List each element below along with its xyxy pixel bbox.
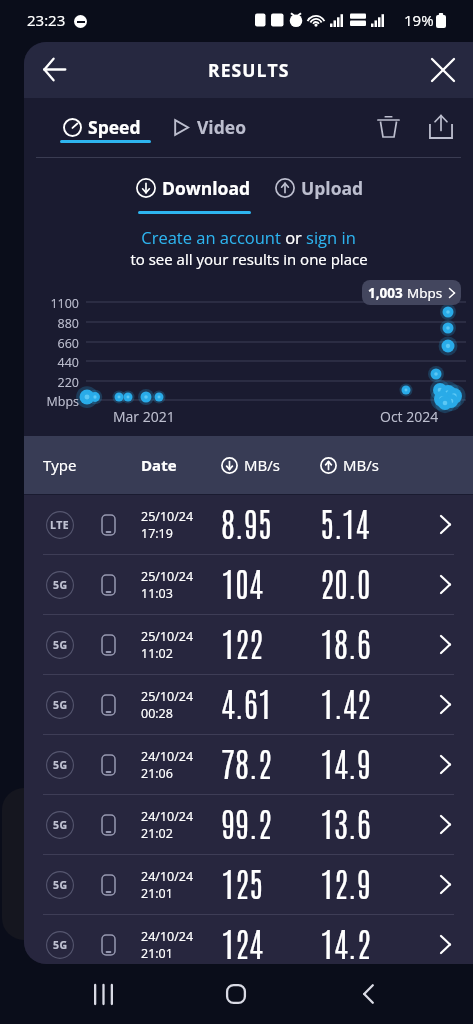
staticText: 122 bbox=[221, 620, 263, 664]
button[interactable]: MB/s bbox=[221, 455, 280, 475]
staticText: 25/10/24 bbox=[141, 508, 194, 525]
button[interactable]: Upload bbox=[267, 168, 372, 208]
staticText: 25/10/24 bbox=[141, 568, 194, 585]
staticText: 440 bbox=[24, 354, 79, 371]
staticText: 14.2 bbox=[320, 920, 371, 964]
staticText: 25/10/24 bbox=[141, 688, 194, 705]
staticText: 5G bbox=[53, 758, 68, 772]
button[interactable]: Recents bbox=[79, 970, 127, 1018]
button[interactable]: Video bbox=[163, 110, 254, 144]
staticText: 5G bbox=[53, 638, 68, 652]
button[interactable]: Speed bbox=[54, 110, 150, 144]
staticText: 99.2 bbox=[221, 800, 272, 844]
button[interactable]: 5G bbox=[24, 855, 473, 914]
staticText: 23:23 bbox=[27, 10, 66, 30]
staticText: 12.9 bbox=[320, 860, 371, 904]
staticText: 20.0 bbox=[320, 560, 371, 604]
staticText: 21:01 bbox=[141, 945, 173, 962]
staticText: 24/10/24 bbox=[141, 928, 194, 945]
staticText: RESULTS bbox=[208, 58, 290, 82]
staticText: 14.9 bbox=[320, 740, 371, 784]
staticText: LTE bbox=[50, 518, 70, 532]
staticText: 21:01 bbox=[141, 885, 173, 902]
staticText: 19% bbox=[404, 10, 434, 30]
button[interactable]: 5G bbox=[24, 675, 473, 734]
button[interactable]: Back bbox=[30, 45, 78, 93]
staticText: Mbps bbox=[24, 393, 79, 410]
staticText: Oct 2024 bbox=[380, 407, 439, 426]
staticText: Mar 2021 bbox=[113, 407, 175, 426]
staticText: 5G bbox=[53, 878, 68, 892]
staticText: 00:28 bbox=[141, 705, 173, 722]
button[interactable]: Download bbox=[128, 168, 259, 208]
staticText: 11:02 bbox=[141, 645, 173, 662]
staticText: 5G bbox=[53, 578, 68, 592]
button[interactable]: Close bbox=[419, 46, 467, 94]
button[interactable]: MB/s bbox=[320, 455, 379, 475]
staticText: Mbps bbox=[407, 284, 443, 302]
button[interactable]: LTE bbox=[24, 495, 473, 554]
button[interactable]: Delete bbox=[364, 102, 412, 150]
button[interactable]: 1,003 bbox=[362, 280, 461, 305]
button[interactable]: 5G bbox=[24, 795, 473, 854]
staticText: 24/10/24 bbox=[141, 868, 194, 885]
button[interactable]: 5G bbox=[24, 735, 473, 794]
staticText: 11:03 bbox=[141, 585, 173, 602]
staticText: Type bbox=[43, 455, 77, 475]
button[interactable]: Share bbox=[417, 102, 465, 150]
staticText: 24/10/24 bbox=[141, 808, 194, 825]
staticText: 18.6 bbox=[320, 620, 371, 664]
staticText: 220 bbox=[24, 374, 79, 391]
staticText: 124 bbox=[221, 920, 263, 964]
staticText: MB/s bbox=[343, 455, 379, 475]
button[interactable]: 5G bbox=[24, 615, 473, 674]
staticText: 5G bbox=[53, 818, 68, 832]
staticText: 5.14 bbox=[320, 500, 370, 544]
staticText: 17:19 bbox=[141, 525, 173, 542]
button[interactable]: Home bbox=[212, 970, 260, 1018]
button[interactable]: 5G bbox=[24, 915, 473, 964]
staticText: 1.42 bbox=[320, 680, 371, 724]
staticText: 1,003 bbox=[368, 284, 403, 302]
staticText: 125 bbox=[221, 860, 263, 904]
staticText: 5G bbox=[53, 698, 68, 712]
staticText: Upload bbox=[301, 176, 364, 200]
staticText: 1100 bbox=[24, 295, 79, 312]
staticText: 24/10/24 bbox=[141, 748, 194, 765]
staticText: Date bbox=[141, 455, 177, 475]
staticText: 880 bbox=[24, 315, 79, 332]
staticText: Download bbox=[162, 176, 251, 200]
button[interactable]: Back bbox=[344, 970, 392, 1018]
staticText: 5G bbox=[53, 938, 68, 952]
staticText: 25/10/24 bbox=[141, 628, 194, 645]
staticText: MB/s bbox=[244, 455, 280, 475]
staticText: Speed bbox=[88, 115, 141, 139]
staticText: 13.6 bbox=[320, 800, 371, 844]
staticText: 8.95 bbox=[221, 500, 272, 544]
staticText: 4.61 bbox=[221, 680, 272, 724]
staticText: to see all your results in one place bbox=[130, 249, 368, 269]
button[interactable]: Create an account or sign in bbox=[141, 226, 356, 248]
staticText: 104 bbox=[221, 560, 263, 604]
staticText: 660 bbox=[24, 335, 79, 352]
staticText: Video bbox=[197, 115, 246, 139]
staticText: 21:02 bbox=[141, 825, 173, 842]
staticText: 78.2 bbox=[221, 740, 272, 784]
button[interactable]: 5G bbox=[24, 555, 473, 614]
staticText: 21:06 bbox=[141, 765, 173, 782]
